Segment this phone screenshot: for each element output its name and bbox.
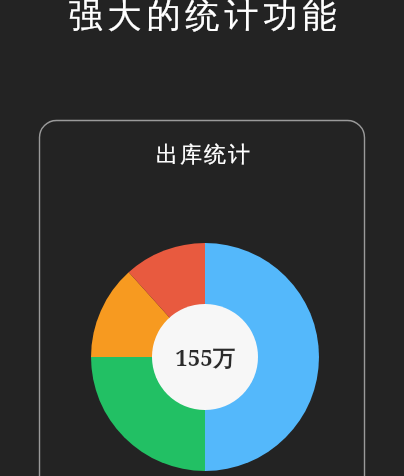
button[interactable] [39,120,365,476]
staticText: 强大的统计功能 [66,0,339,37]
staticText: 155万 [175,342,235,372]
button[interactable]: 出库统计 饼图 [91,243,319,471]
staticText: 出库统计 [155,141,251,169]
